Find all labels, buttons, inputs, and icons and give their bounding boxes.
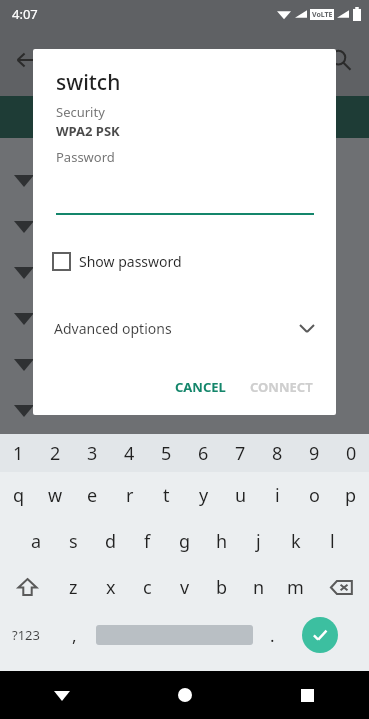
staticText: d: [105, 529, 117, 554]
button[interactable]: r: [111, 472, 148, 518]
staticText: VoLTE: [312, 10, 333, 20]
button[interactable]: i: [259, 472, 296, 518]
staticText: Show password: [79, 252, 182, 271]
staticText: g: [179, 529, 191, 554]
button[interactable]: a: [18, 518, 55, 564]
button[interactable]: s: [55, 518, 92, 564]
button[interactable]: 2: [37, 434, 74, 472]
staticText: o: [309, 483, 320, 508]
button[interactable]: 8: [259, 434, 296, 472]
button[interactable]: 3: [74, 434, 111, 472]
staticText: q: [13, 483, 25, 508]
staticText: z: [69, 575, 78, 600]
staticText: t: [163, 483, 170, 508]
staticText: Password: [56, 148, 115, 166]
staticText: e: [87, 483, 98, 508]
button[interactable]: 9: [296, 434, 333, 472]
button[interactable]: t: [148, 472, 185, 518]
button[interactable]: c: [129, 564, 166, 610]
staticText: n: [253, 575, 265, 600]
button[interactable]: Enter: [291, 610, 349, 660]
button[interactable]: o: [296, 472, 333, 518]
button[interactable]: l: [314, 518, 351, 564]
button[interactable]: Home: [123, 671, 246, 719]
staticText: 8: [272, 441, 283, 466]
staticText: r: [126, 483, 134, 508]
button[interactable]: j: [240, 518, 277, 564]
button[interactable]: CONNECT: [241, 369, 322, 405]
staticText: CANCEL: [175, 378, 226, 396]
button[interactable]: y: [185, 472, 222, 518]
staticText: Security: [56, 103, 105, 121]
staticText: x: [106, 575, 116, 600]
button[interactable]: Backspace: [314, 564, 369, 610]
button[interactable]: v: [166, 564, 203, 610]
button[interactable]: n: [240, 564, 277, 610]
staticText: m: [287, 575, 304, 600]
button[interactable]: x: [92, 564, 129, 610]
button[interactable]: u: [222, 472, 259, 518]
staticText: u: [235, 483, 247, 508]
button[interactable]: b: [203, 564, 240, 610]
staticText: i: [275, 483, 280, 508]
other: Expand advanced options: [298, 319, 316, 337]
staticText: 0: [346, 441, 357, 466]
staticText: c: [143, 575, 152, 600]
button[interactable]: ?123: [0, 610, 52, 660]
staticText: ,: [72, 624, 77, 647]
staticText: CONNECT: [250, 378, 313, 396]
staticText: 9: [309, 441, 320, 466]
staticText: 2: [50, 441, 61, 466]
staticText: y: [199, 483, 209, 508]
button[interactable]: g: [166, 518, 203, 564]
button[interactable]: Shift: [0, 564, 55, 610]
staticText: .: [270, 624, 275, 647]
button[interactable]: k: [277, 518, 314, 564]
button[interactable]: Recents: [246, 671, 369, 719]
button[interactable]: Hide keyboard: [0, 671, 123, 719]
staticText: 4: [124, 441, 135, 466]
button[interactable]: h: [203, 518, 240, 564]
staticText: v: [180, 575, 190, 600]
staticText: h: [216, 529, 228, 554]
staticText: 3: [87, 441, 98, 466]
button[interactable]: 7: [222, 434, 259, 472]
staticText: Advanced options: [54, 319, 172, 338]
button[interactable]: CANCEL: [166, 369, 235, 405]
button[interactable]: 6: [185, 434, 222, 472]
staticText: 4:07: [12, 5, 38, 23]
button[interactable]: m: [277, 564, 314, 610]
staticText: p: [345, 483, 357, 508]
button[interactable]: e: [74, 472, 111, 518]
button[interactable]: d: [92, 518, 129, 564]
staticText: a: [31, 529, 42, 554]
button[interactable]: f: [129, 518, 166, 564]
staticText: f: [144, 529, 151, 554]
button[interactable]: 1: [0, 434, 37, 472]
button[interactable]: z: [55, 564, 92, 610]
staticText: s: [69, 529, 78, 554]
staticText: b: [216, 575, 228, 600]
button[interactable]: 0: [333, 434, 369, 472]
staticText: WPA2 PSK: [56, 122, 120, 140]
button[interactable]: Show password: [53, 246, 243, 276]
staticText: ?123: [12, 626, 40, 644]
button[interactable]: q: [0, 472, 37, 518]
staticText: w: [48, 483, 63, 508]
button[interactable]: Advanced options: [54, 311, 316, 345]
button[interactable]: ,: [52, 610, 96, 660]
staticText: k: [291, 529, 301, 554]
staticText: l: [330, 529, 335, 554]
staticText: switch: [56, 68, 121, 97]
button[interactable]: 5: [148, 434, 185, 472]
button[interactable]: [56, 189, 314, 215]
staticText: 6: [198, 441, 209, 466]
staticText: 7: [235, 441, 246, 466]
button[interactable]: p: [333, 472, 369, 518]
button[interactable]: w: [37, 472, 74, 518]
button[interactable]: Space: [96, 610, 253, 660]
staticText: 5: [161, 441, 172, 466]
button[interactable]: .: [253, 610, 291, 660]
staticText: j: [256, 529, 261, 554]
button[interactable]: 4: [111, 434, 148, 472]
